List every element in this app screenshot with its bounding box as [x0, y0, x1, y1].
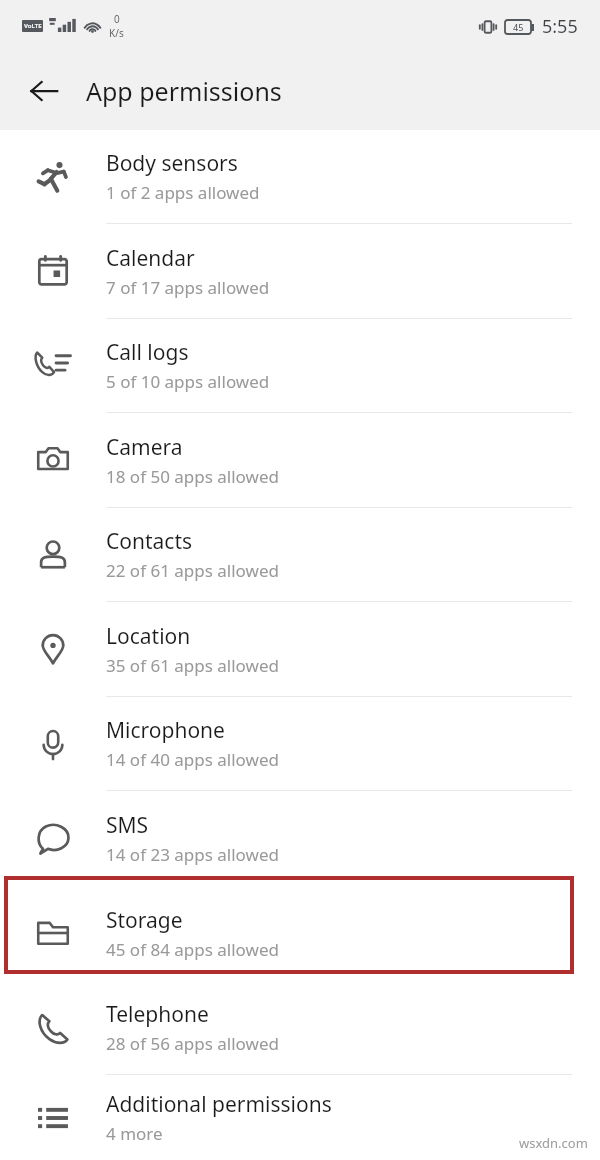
staticText: Calendar [106, 244, 195, 273]
staticText: 18 of 50 apps allowed [106, 465, 279, 488]
button[interactable]: Calendar [0, 224, 600, 319]
staticText: 35 of 61 apps allowed [106, 654, 279, 677]
staticText: 5 of 10 apps allowed [106, 370, 270, 393]
button[interactable]: Storage [0, 886, 600, 981]
staticText: K/s [109, 26, 124, 40]
staticText: Contacts [106, 527, 193, 556]
staticText: 14 of 23 apps allowed [106, 843, 279, 866]
staticText: 7 of 17 apps allowed [106, 276, 270, 299]
button[interactable]: Call logs [0, 319, 600, 413]
staticText: wsxdn.com [519, 1134, 588, 1152]
staticText: 0 [114, 12, 120, 26]
staticText: Camera [106, 433, 183, 462]
button[interactable]: Microphone [0, 697, 600, 791]
staticText: Body sensors [106, 149, 238, 178]
staticText: 5:55 [542, 14, 578, 39]
button[interactable]: Location [0, 602, 600, 697]
staticText: SMS [106, 811, 149, 840]
staticText: VoLTE [24, 22, 42, 30]
staticText: 22 of 61 apps allowed [106, 559, 279, 582]
button[interactable]: Camera [0, 413, 600, 508]
staticText: Microphone [106, 716, 225, 745]
staticText: 45 of 84 apps allowed [106, 938, 279, 961]
staticText: 1 of 2 apps allowed [106, 181, 260, 204]
staticText: 4 more [106, 1122, 163, 1145]
button[interactable]: SMS [0, 791, 600, 886]
button[interactable]: Additional permissions [0, 1075, 600, 1160]
button[interactable]: Telephone [0, 981, 600, 1075]
staticText: Additional permissions [106, 1090, 332, 1119]
staticText: Location [106, 622, 191, 651]
staticText: 14 of 40 apps allowed [106, 748, 279, 771]
staticText: App permissions [86, 74, 282, 108]
staticText: Storage [106, 906, 183, 935]
staticText: Telephone [106, 1000, 209, 1029]
staticText: Call logs [106, 338, 189, 367]
button[interactable]: Back [16, 63, 72, 119]
button[interactable]: Contacts [0, 508, 600, 602]
button[interactable]: Body sensors [0, 130, 600, 224]
staticText: 45 [513, 21, 524, 33]
staticText: 28 of 56 apps allowed [106, 1032, 279, 1055]
